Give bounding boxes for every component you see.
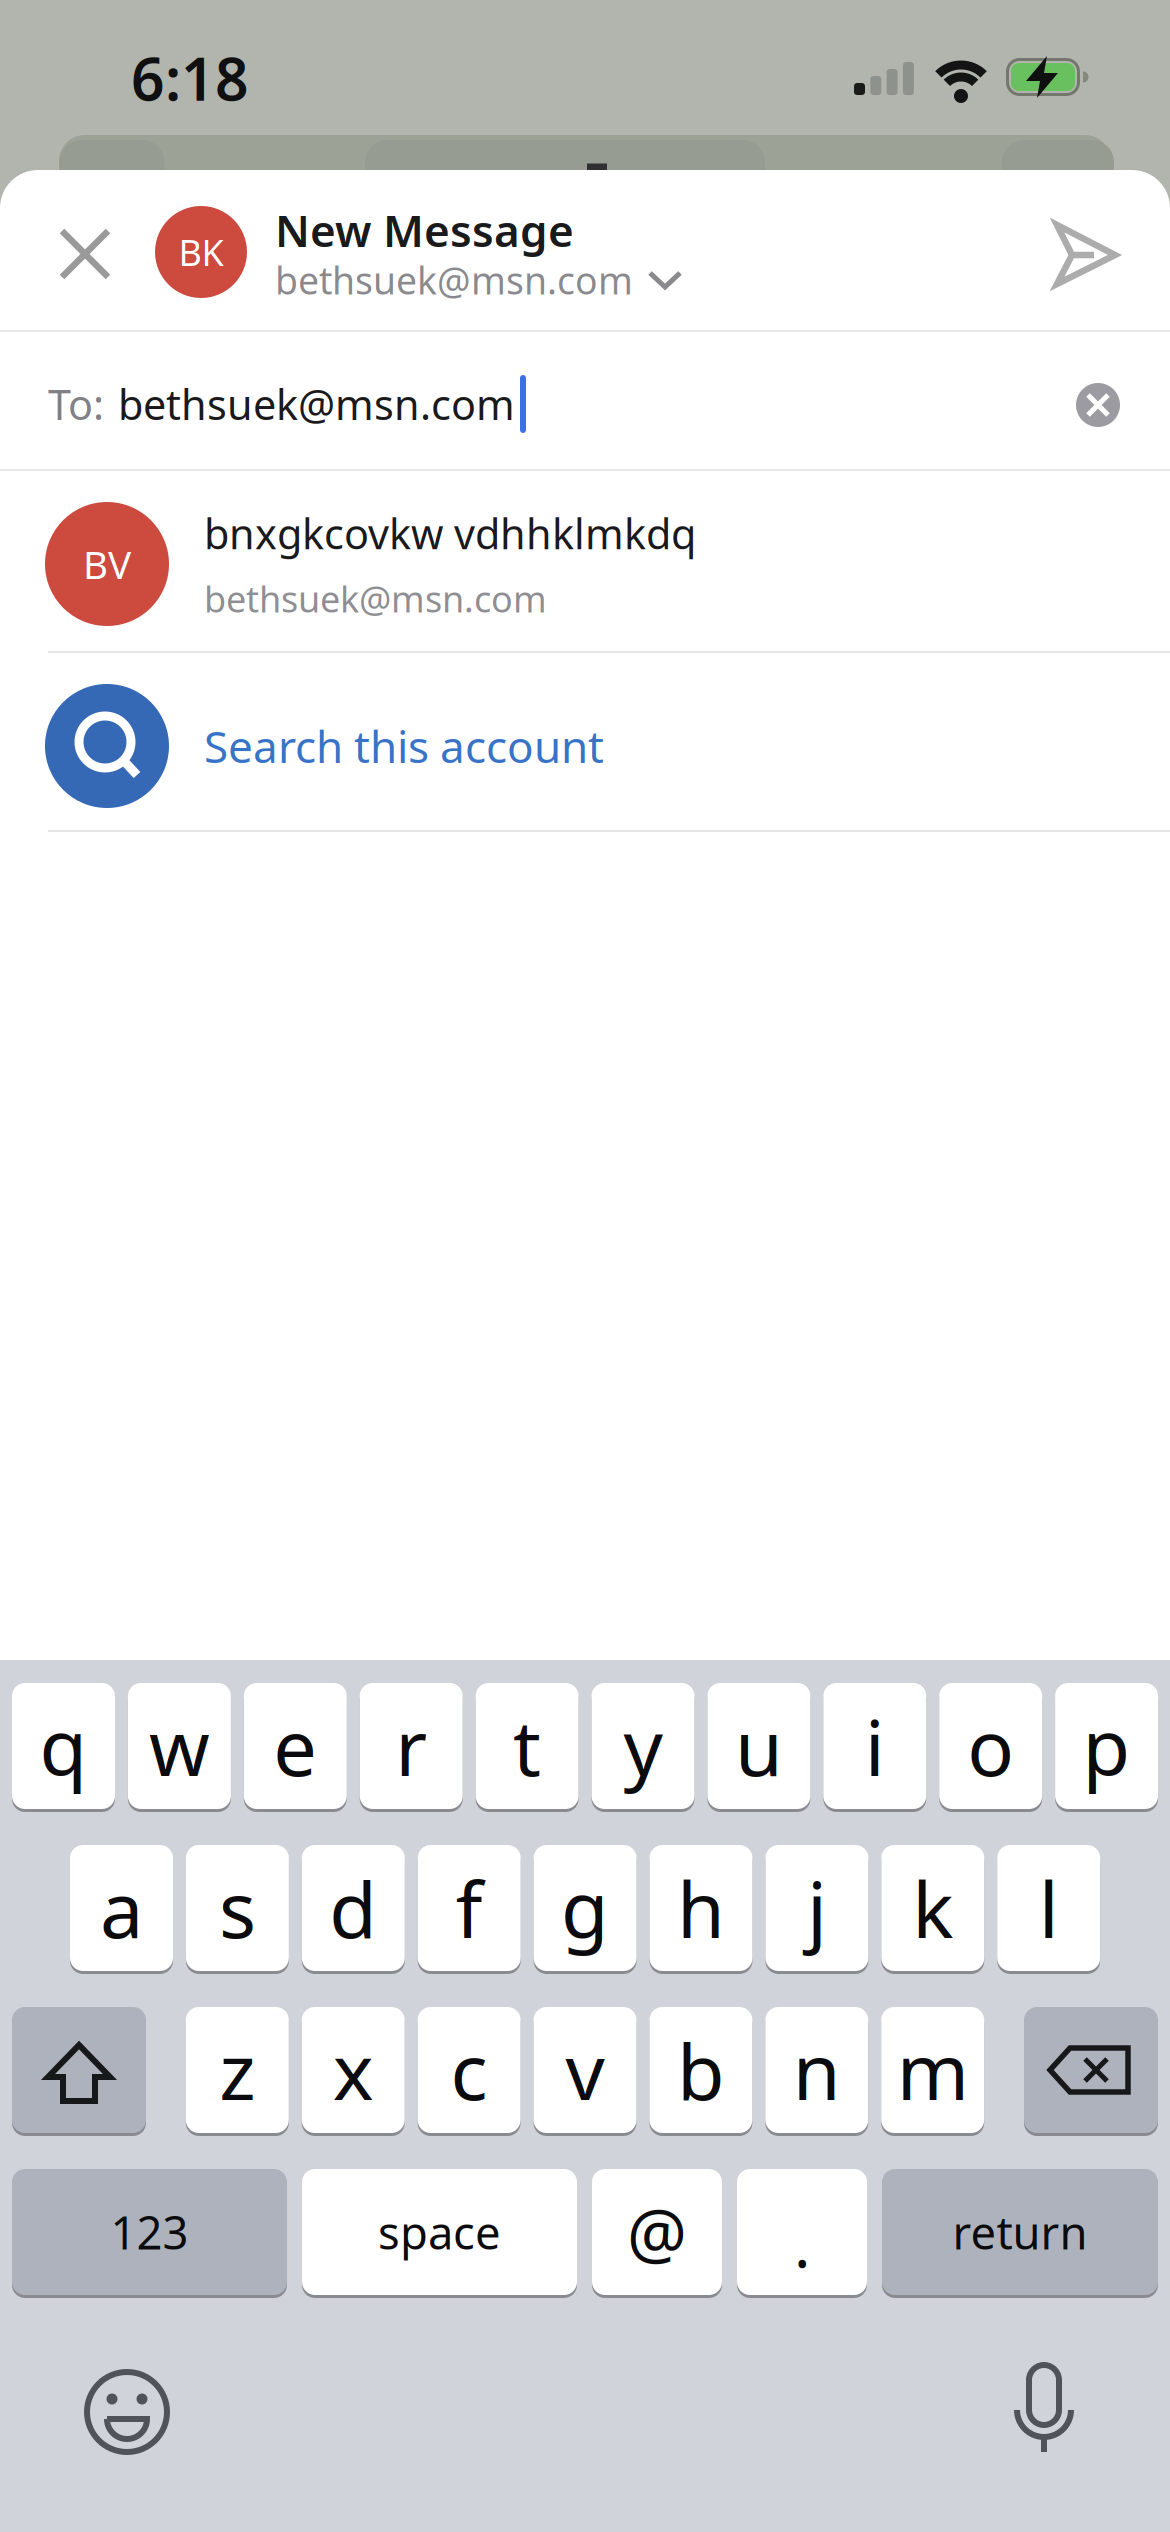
staticText: k <box>912 1857 953 1959</box>
staticText: bethsuek@msn.com <box>204 574 547 622</box>
button[interactable]: r <box>360 1683 463 1809</box>
staticText: a <box>100 1857 143 1959</box>
button[interactable]: v <box>533 2007 636 2133</box>
button[interactable]: w <box>128 1683 231 1809</box>
button[interactable]: y <box>591 1683 694 1809</box>
button[interactable]: Emoji <box>72 2357 182 2467</box>
button[interactable]: BV <box>0 474 1170 654</box>
button[interactable]: m <box>881 2007 984 2133</box>
button[interactable]: Dictation <box>989 2355 1099 2465</box>
staticText: BK <box>178 228 223 276</box>
staticText: New Message <box>275 201 574 259</box>
button[interactable]: e <box>244 1683 347 1809</box>
button[interactable]: q <box>12 1683 115 1809</box>
staticText: q <box>39 1695 87 1797</box>
button[interactable]: d <box>302 1845 405 1971</box>
staticText: f <box>456 1857 483 1959</box>
staticText: @ <box>627 2188 687 2276</box>
button[interactable]: Return <box>882 2169 1158 2295</box>
staticText: c <box>451 2019 488 2121</box>
staticText: s <box>219 1857 256 1959</box>
staticText: bethsuek@msn.com <box>118 377 515 431</box>
button[interactable]: Space <box>302 2169 577 2295</box>
staticText: v <box>565 2019 604 2121</box>
staticText: l <box>1039 1857 1059 1959</box>
button[interactable]: s <box>186 1845 289 1971</box>
staticText: b <box>677 2019 725 2121</box>
button[interactable]: Shift <box>12 2007 146 2133</box>
button[interactable]: Close <box>45 214 125 294</box>
staticText: j <box>807 1857 827 1959</box>
button[interactable]: Search this account <box>0 666 1170 826</box>
button[interactable]: z <box>186 2007 289 2133</box>
button[interactable]: c <box>418 2007 521 2133</box>
button[interactable]: a <box>70 1845 173 1971</box>
staticText: p <box>1083 1695 1131 1797</box>
button[interactable]: u <box>707 1683 810 1809</box>
button[interactable]: o <box>939 1683 1042 1809</box>
button[interactable]: Delete <box>1024 2007 1158 2133</box>
button[interactable]: f <box>418 1845 521 1971</box>
button[interactable]: At sign <box>592 2169 722 2295</box>
button[interactable]: g <box>534 1845 637 1971</box>
staticText: x <box>333 2019 374 2121</box>
button[interactable]: Clear <box>1063 370 1133 440</box>
button[interactable]: p <box>1055 1683 1158 1809</box>
staticText: Search this account <box>204 717 604 775</box>
button[interactable]: Send <box>1041 210 1131 300</box>
staticText: m <box>897 2019 969 2121</box>
button[interactable]: Change account <box>275 255 875 305</box>
button[interactable]: t <box>476 1683 579 1809</box>
button[interactable]: b <box>649 2007 752 2133</box>
button[interactable]: To field <box>48 373 948 435</box>
staticText: u <box>735 1695 783 1797</box>
staticText: To: <box>48 377 104 431</box>
button[interactable]: k <box>881 1845 984 1971</box>
staticText: t <box>513 1695 541 1797</box>
staticText: y <box>623 1695 662 1797</box>
staticText: n <box>793 2019 841 2121</box>
staticText: 6:18 <box>131 39 249 117</box>
staticText: h <box>677 1857 725 1959</box>
staticText: d <box>329 1857 377 1959</box>
button[interactable]: i <box>823 1683 926 1809</box>
button[interactable]: l <box>997 1845 1100 1971</box>
staticText: e <box>273 1695 317 1797</box>
staticText: BV <box>83 538 131 590</box>
staticText: bethsuek@msn.com <box>275 255 633 305</box>
staticText: z <box>219 2019 255 2121</box>
staticText: bnxgkcovkw vdhhklmkdq <box>204 506 696 561</box>
staticText: i <box>865 1695 885 1797</box>
button[interactable]: Period <box>737 2169 867 2295</box>
staticText: r <box>395 1695 427 1797</box>
button[interactable]: Numbers <box>12 2169 287 2295</box>
staticText: g <box>561 1857 609 1959</box>
button[interactable]: h <box>649 1845 752 1971</box>
staticText: w <box>149 1695 210 1797</box>
button[interactable]: n <box>765 2007 868 2133</box>
staticText: 123 <box>110 2202 188 2262</box>
button[interactable]: j <box>765 1845 868 1971</box>
staticText: return <box>952 2202 1087 2262</box>
staticText: . <box>794 2203 810 2285</box>
button[interactable]: x <box>302 2007 405 2133</box>
staticText: space <box>378 2202 501 2262</box>
staticText: o <box>967 1695 1014 1797</box>
